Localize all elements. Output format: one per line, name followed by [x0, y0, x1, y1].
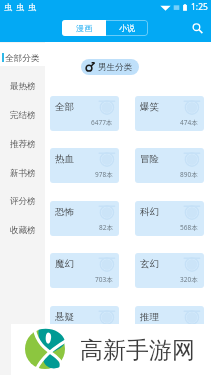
button[interactable]: 科幻: [135, 201, 204, 236]
button[interactable]: 漫画: [62, 20, 106, 36]
button[interactable]: 冒险: [135, 148, 204, 183]
staticText: 男生分类: [98, 62, 132, 73]
staticText: 推理: [140, 311, 159, 323]
staticText: 最热榜: [10, 81, 36, 92]
staticText: 6477本: [91, 118, 113, 127]
staticText: 小说: [119, 23, 135, 33]
staticText: 完结榜: [10, 110, 36, 121]
staticText: 冒险: [140, 153, 159, 165]
button[interactable]: 玄幻: [135, 253, 204, 288]
button[interactable]: 小说: [106, 20, 148, 36]
staticText: 全部分类: [5, 53, 40, 64]
staticText: 爆笑: [140, 101, 159, 113]
staticText: 978本: [95, 170, 113, 179]
button[interactable]: 爆笑: [135, 96, 204, 131]
staticText: 评分榜: [10, 196, 36, 207]
staticText: 1:25: [191, 1, 208, 13]
staticText: 890本: [180, 170, 198, 179]
button[interactable]: 收藏榜: [0, 216, 45, 244]
button[interactable]: 魔幻: [50, 253, 119, 288]
staticText: 魔幻: [55, 258, 74, 270]
staticText: 虫: [4, 2, 12, 12]
staticText: 新书榜: [10, 168, 36, 179]
staticText: 320本: [180, 275, 198, 284]
staticText: 82本: [99, 223, 113, 232]
button[interactable]: 完结榜: [0, 101, 45, 129]
button[interactable]: 推理: [135, 306, 204, 341]
staticText: 高新手游网: [80, 336, 195, 365]
staticText: 玄幻: [140, 258, 159, 270]
staticText: 568本: [180, 223, 198, 232]
staticText: 虫: [16, 2, 24, 12]
staticText: 虫: [28, 2, 36, 12]
staticText: 漫画: [76, 23, 92, 33]
button[interactable]: 推荐榜: [0, 130, 45, 158]
staticText: 474本: [180, 118, 198, 127]
button[interactable]: 全部分类: [0, 44, 45, 72]
button[interactable]: 恐怖: [50, 201, 119, 236]
button[interactable]: 男生分类: [85, 59, 132, 75]
button[interactable]: [0, 43, 45, 66]
staticText: 推荐榜: [10, 139, 36, 150]
button[interactable]: Search: [183, 14, 211, 42]
staticText: 恐怖: [55, 206, 74, 218]
button[interactable]: 评分榜: [0, 187, 45, 215]
button[interactable]: 新书榜: [0, 159, 45, 187]
button[interactable]: 全部: [50, 96, 119, 131]
staticText: 科幻: [140, 206, 159, 218]
staticText: 收藏榜: [10, 225, 36, 236]
staticText: 热血: [55, 153, 74, 165]
staticText: 悬疑: [55, 311, 74, 323]
button[interactable]: 悬疑: [50, 306, 119, 341]
button[interactable]: 最热榜: [0, 72, 45, 100]
staticText: 全部: [55, 101, 74, 113]
button[interactable]: 热血: [50, 148, 119, 183]
staticText: 703本: [95, 275, 113, 284]
